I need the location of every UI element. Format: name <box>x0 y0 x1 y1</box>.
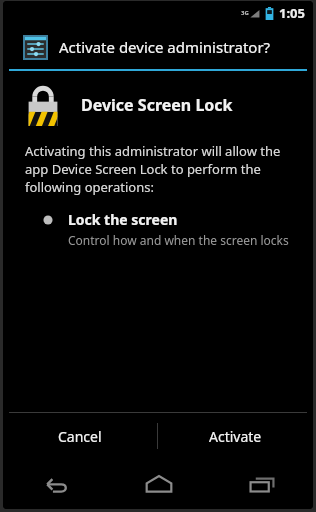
staticText: Cancel <box>58 427 102 446</box>
staticText: Lock the screen <box>68 210 178 229</box>
staticText: Device Screen Lock <box>81 94 233 116</box>
button[interactable]: Activate <box>158 413 313 459</box>
button[interactable]: Cancel <box>3 413 157 459</box>
button[interactable]: Home <box>107 459 210 509</box>
staticText: Activating this administrator will allow… <box>25 142 295 196</box>
staticText: 1:05 <box>279 4 305 22</box>
staticText: Activate device administrator? <box>59 37 271 57</box>
staticText: Control how and when the screen locks <box>68 232 289 248</box>
button[interactable]: Recent apps <box>210 459 313 509</box>
staticText: 3G <box>241 9 249 17</box>
button[interactable]: Back <box>3 459 107 509</box>
staticText: Activate <box>209 427 262 446</box>
